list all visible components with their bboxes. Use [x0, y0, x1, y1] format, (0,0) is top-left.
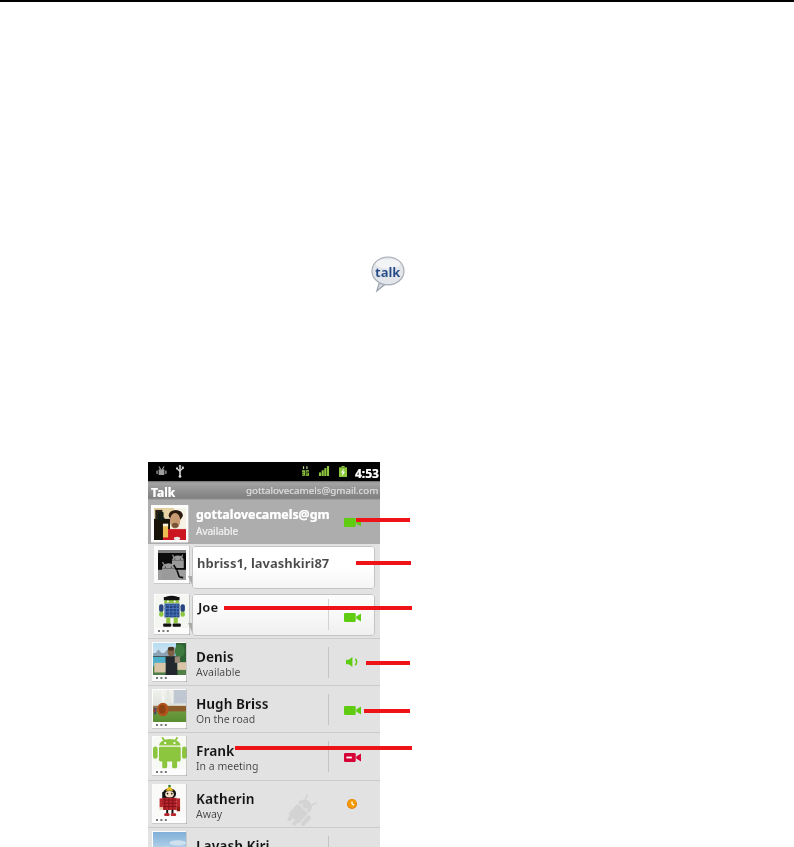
button[interactable]: Hugh Briss — [148, 686, 380, 732]
staticText: Available — [196, 524, 239, 538]
staticText: 4:53 — [355, 465, 379, 481]
staticText: On the road — [196, 712, 256, 726]
button[interactable]: Call Denis — [329, 639, 380, 685]
staticText: Hugh Briss — [196, 695, 269, 713]
button[interactable]: gottalovecamels@gm — [148, 500, 380, 544]
staticText: gottalovecamels@gmail.com — [246, 484, 379, 497]
staticText: gottalovecamels@gm — [196, 506, 330, 523]
staticText: talk — [375, 263, 401, 281]
staticText: Away — [196, 807, 223, 821]
staticText: Frank — [196, 742, 235, 760]
button[interactable]: Video call Joe — [329, 594, 375, 636]
button[interactable]: Call Frank — [329, 733, 380, 779]
staticText: Joe — [198, 598, 219, 616]
button[interactable]: Change status — [333, 500, 380, 544]
staticText: Denis — [196, 648, 234, 666]
staticText: Lavash Kiri — [196, 837, 270, 847]
button[interactable]: Katherin — [148, 781, 380, 827]
staticText: hbriss1, lavashkiri87 — [197, 554, 330, 572]
button[interactable]: Lavash Kiri — [148, 828, 380, 847]
staticText: Katherin — [196, 790, 255, 808]
button[interactable]: Talk — [148, 481, 380, 500]
button[interactable]: hbriss1, lavashkiri87 — [148, 544, 380, 592]
button[interactable]: Denis — [148, 639, 380, 685]
staticText: In a meeting — [196, 759, 259, 773]
staticText: Available — [196, 665, 241, 679]
staticText: Talk — [151, 484, 176, 500]
button[interactable]: Frank — [148, 733, 380, 779]
button[interactable]: Call Hugh Briss — [329, 686, 380, 732]
button[interactable]: Joe — [148, 592, 380, 638]
button[interactable]: Call Katherin — [329, 781, 380, 827]
